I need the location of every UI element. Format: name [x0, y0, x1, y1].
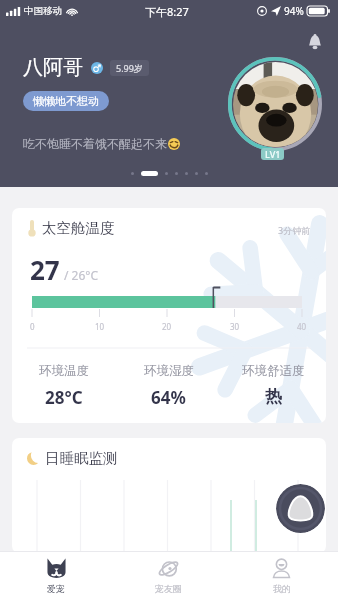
staticText: 94%	[284, 4, 304, 18]
staticText: 吃不饱睡不着饿不醒起不来	[23, 136, 167, 151]
staticText: 八阿哥	[23, 55, 83, 80]
staticText: 太空舱温度	[42, 219, 115, 237]
staticText: 中国移动	[24, 5, 62, 17]
staticText: 宠友圈	[155, 583, 182, 594]
staticText: 热	[265, 386, 282, 407]
staticText: 10	[95, 321, 105, 332]
button[interactable]: Pet activity detail	[276, 484, 325, 533]
button[interactable]: 爱宠	[0, 552, 112, 600]
staticText: 环境湿度	[144, 363, 194, 379]
staticText: 5.99岁	[116, 62, 143, 74]
staticText: 27	[30, 252, 60, 287]
staticText: 日睡眠监测	[45, 449, 118, 467]
staticText: 下午8:27	[145, 4, 189, 19]
button[interactable]: 懒懒地不想动	[33, 94, 99, 108]
button[interactable]: 宠友圈	[112, 552, 225, 600]
staticText: 3分钟前	[278, 224, 311, 236]
staticText: / 26°C	[64, 267, 99, 283]
staticText: 40	[297, 321, 307, 332]
staticText: 64%	[151, 386, 186, 409]
staticText: 28°C	[45, 386, 83, 409]
staticText: 0	[30, 321, 35, 332]
staticText: 环境舒适度	[242, 363, 305, 379]
staticText: LV1	[265, 148, 281, 160]
staticText: 30	[230, 321, 240, 332]
staticText: 爱宠	[47, 583, 65, 594]
staticText: 20	[162, 321, 172, 332]
button[interactable]: 我的	[225, 552, 338, 600]
button[interactable]: Notifications	[302, 29, 328, 55]
staticText: 懒懒地不想动	[33, 94, 99, 108]
button[interactable]: Pet avatar	[228, 57, 322, 151]
staticText: 我的	[273, 583, 291, 594]
staticText: 环境温度	[39, 363, 89, 379]
